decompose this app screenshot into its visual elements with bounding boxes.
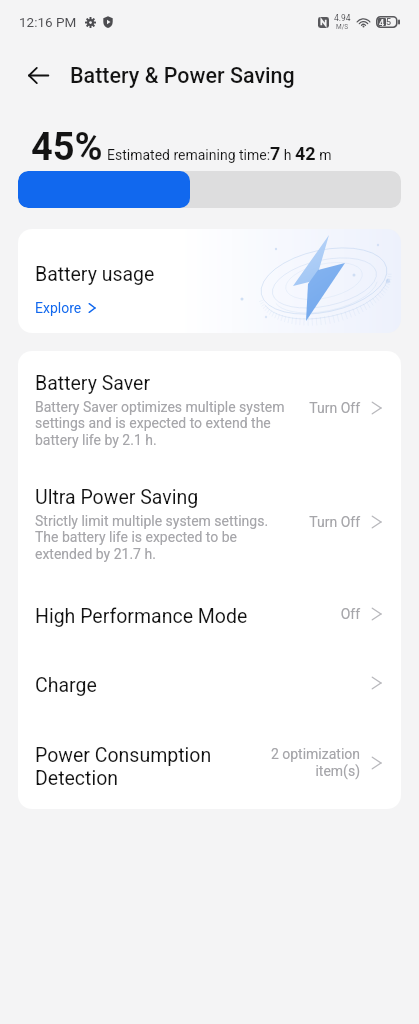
staticText: 45% (31, 125, 103, 170)
staticText: 4.94 (334, 13, 351, 23)
button[interactable]: Battery Saver (18, 351, 401, 465)
button[interactable]: Ultra Power Saving (18, 465, 401, 579)
staticText: Strictly limit multiple system settings.… (35, 513, 291, 562)
staticText: Off (267, 606, 360, 622)
button[interactable]: Charge (18, 648, 401, 717)
staticText: Ultra Power Saving (35, 486, 199, 509)
staticText: 12:16 PM (19, 14, 77, 30)
button[interactable]: Power Consumption Detection (18, 717, 401, 809)
staticText: Battery Saver (35, 372, 151, 395)
staticText: 5 (386, 17, 392, 28)
staticText: Power Consumption Detection (35, 744, 291, 790)
staticText: Charge (35, 674, 97, 697)
staticText: High Performance Mode (35, 605, 248, 628)
staticText: Battery Saver optimizes multiple system … (35, 399, 291, 448)
staticText: 2 optimization item(s) (267, 746, 360, 780)
staticText: M/S (336, 23, 349, 31)
button[interactable]: Back (18, 55, 58, 95)
staticText: Turn Off (267, 400, 360, 416)
staticText: 4 (379, 18, 385, 26)
staticText: Battery & Power Saving (70, 63, 295, 88)
button[interactable]: Battery usage (18, 229, 401, 333)
staticText: Turn Off (267, 514, 360, 530)
staticText: Estimated remaining time:7 h 42 m (107, 143, 332, 164)
button[interactable]: High Performance Mode (18, 579, 401, 648)
staticText: Explore (35, 300, 82, 316)
staticText: Battery usage (35, 263, 155, 286)
